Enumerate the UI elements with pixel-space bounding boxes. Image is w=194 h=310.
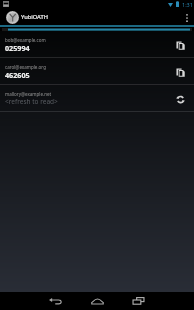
button[interactable]: bob@example.com <box>0 31 194 57</box>
staticText: YubiOATH <box>21 13 48 21</box>
button[interactable]: Recent apps <box>122 292 154 310</box>
button[interactable]: mallory@example.net <box>0 85 194 111</box>
button[interactable]: Home <box>81 292 113 310</box>
button[interactable]: Copy code <box>169 60 191 85</box>
staticText: <refresh to read> <box>5 97 58 106</box>
button[interactable]: Copy code <box>169 33 191 58</box>
staticText: 462605 <box>5 70 30 80</box>
staticText: bob@example.com <box>5 37 46 43</box>
staticText: mallory@example.net <box>5 91 52 97</box>
staticText: 025994 <box>5 43 30 53</box>
button[interactable]: Back <box>39 292 71 310</box>
button[interactable]: Refresh code <box>169 87 191 112</box>
staticText: carol@example.org <box>5 64 46 70</box>
staticText: 1:31 <box>182 1 193 8</box>
button[interactable]: carol@example.org <box>0 58 194 84</box>
button[interactable]: More options <box>180 10 194 25</box>
